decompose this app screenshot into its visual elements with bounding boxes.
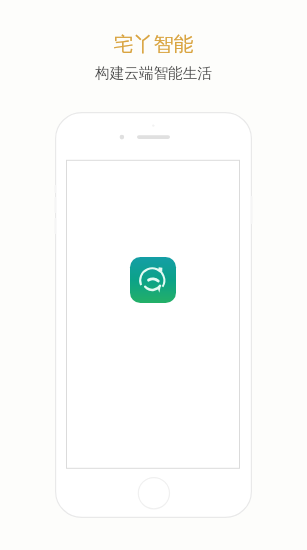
button[interactable]: App icon [130,257,176,303]
staticText: 构建云端智能生活 [0,64,307,82]
staticText: 宅丫智能 [0,32,307,57]
